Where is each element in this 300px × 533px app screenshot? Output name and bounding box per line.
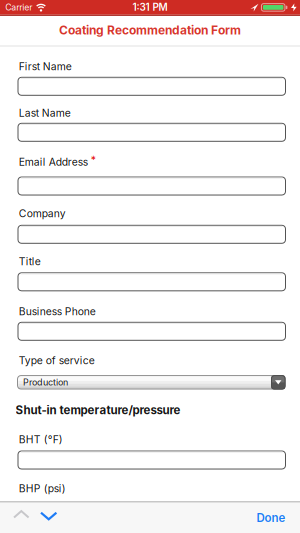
button[interactable]: Type of service [17, 375, 285, 390]
staticText: Title [19, 255, 41, 268]
staticText: Type of service [19, 354, 95, 367]
button[interactable]: Next field [40, 512, 57, 520]
staticText: Carrier [5, 2, 32, 13]
staticText: Coating Recommendation Form [59, 23, 241, 37]
button[interactable]: Done [256, 511, 285, 525]
staticText: Shut-in temperature/pressure [15, 403, 180, 417]
staticText: Company [19, 207, 66, 220]
staticText: Business Phone [19, 305, 96, 318]
staticText: BHT (°F) [19, 433, 63, 446]
button[interactable]: Company [17, 225, 286, 244]
button[interactable]: Business Phone [17, 322, 286, 341]
button[interactable]: Previous field [13, 510, 29, 518]
staticText: Last Name [19, 107, 71, 119]
staticText: BHP (psi) [19, 482, 66, 495]
button[interactable]: Title [17, 272, 286, 291]
staticText: First Name [19, 60, 72, 73]
button[interactable]: BHT (°F) [17, 450, 286, 469]
staticText: Done [256, 511, 285, 525]
button[interactable]: Email Address [17, 176, 286, 195]
staticText: Email Address [19, 156, 88, 168]
staticText: * [91, 154, 96, 166]
button[interactable]: Last Name [17, 123, 286, 142]
staticText: 1:31 PM [132, 1, 167, 13]
button[interactable]: First Name [17, 77, 286, 96]
staticText: Production [23, 377, 68, 388]
